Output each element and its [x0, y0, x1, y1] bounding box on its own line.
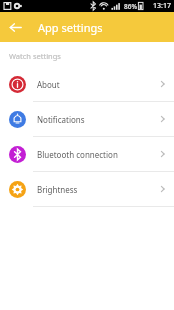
- staticText: Watch settings: [9, 51, 61, 61]
- staticText: App settings: [38, 20, 103, 35]
- staticText: Brightness: [37, 184, 157, 195]
- staticText: Bluetooth connection: [37, 149, 157, 160]
- button[interactable]: About: [0, 67, 174, 101]
- staticText: 13:17: [153, 1, 171, 11]
- button[interactable]: Brightness: [0, 172, 174, 206]
- staticText: Notifications: [37, 114, 157, 125]
- button[interactable]: Notifications: [0, 102, 174, 136]
- staticText: About: [37, 79, 157, 90]
- button[interactable]: Back: [5, 17, 26, 38]
- button[interactable]: Bluetooth connection: [0, 137, 174, 171]
- staticText: 86%: [124, 2, 137, 11]
